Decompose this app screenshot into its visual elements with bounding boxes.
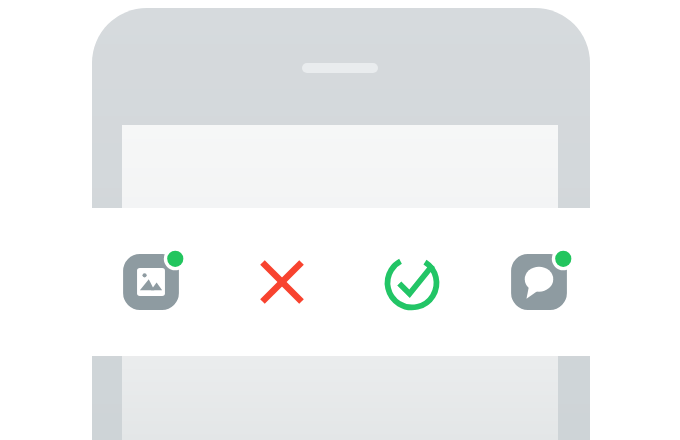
button[interactable]: Confirm bbox=[378, 248, 446, 316]
button[interactable]: Messages, 1 new bbox=[505, 248, 573, 316]
button[interactable]: Photos, 1 new bbox=[117, 248, 185, 316]
button[interactable]: Dismiss bbox=[248, 248, 316, 316]
